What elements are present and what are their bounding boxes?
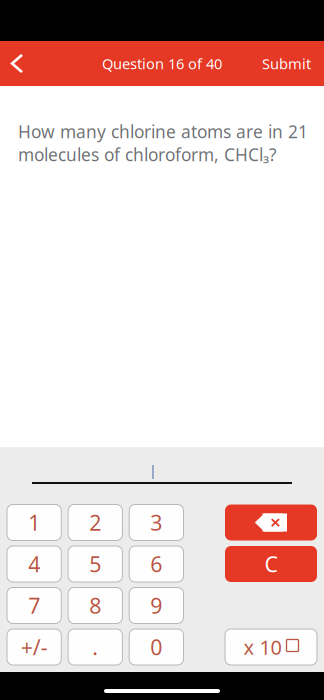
button[interactable]: 5 — [68, 546, 122, 582]
staticText: Submit — [262, 54, 311, 73]
staticText: C — [264, 550, 277, 578]
button[interactable]: 0 — [129, 629, 183, 665]
button[interactable]: 3 — [129, 504, 183, 540]
button[interactable]: 4 — [7, 546, 61, 582]
button[interactable]: Submit — [262, 41, 324, 86]
button[interactable]: 9 — [129, 587, 183, 623]
staticText: 8 — [89, 591, 101, 620]
staticText: Question 16 of 40 — [102, 54, 222, 73]
button[interactable]: Delete — [225, 504, 317, 540]
button[interactable]: x 10 — [225, 629, 317, 665]
button[interactable]: 2 — [68, 504, 122, 540]
staticText: 6 — [150, 550, 162, 578]
button[interactable]: 6 — [129, 546, 183, 582]
staticText: 5 — [89, 550, 101, 578]
staticText: 3 — [150, 508, 162, 537]
staticText: 0 — [150, 633, 162, 661]
button[interactable]: 7 — [7, 587, 61, 623]
button[interactable]: Clear — [225, 546, 317, 582]
button[interactable]: 8 — [68, 587, 122, 623]
button[interactable]: Back — [0, 41, 34, 86]
staticText: 4 — [28, 550, 40, 578]
staticText: . — [92, 633, 98, 661]
staticText: +/- — [21, 633, 48, 661]
staticText: 2 — [89, 508, 101, 537]
staticText: 9 — [150, 591, 162, 620]
staticText: 1 — [28, 508, 40, 537]
staticText: x 10 — [243, 634, 281, 660]
staticText: 7 — [28, 591, 40, 620]
button[interactable]: 1 — [7, 504, 61, 540]
staticText: How many chlorine atoms are in 21 molecu… — [18, 120, 308, 166]
button[interactable]: +/- — [7, 629, 61, 665]
button[interactable]: . — [68, 629, 122, 665]
